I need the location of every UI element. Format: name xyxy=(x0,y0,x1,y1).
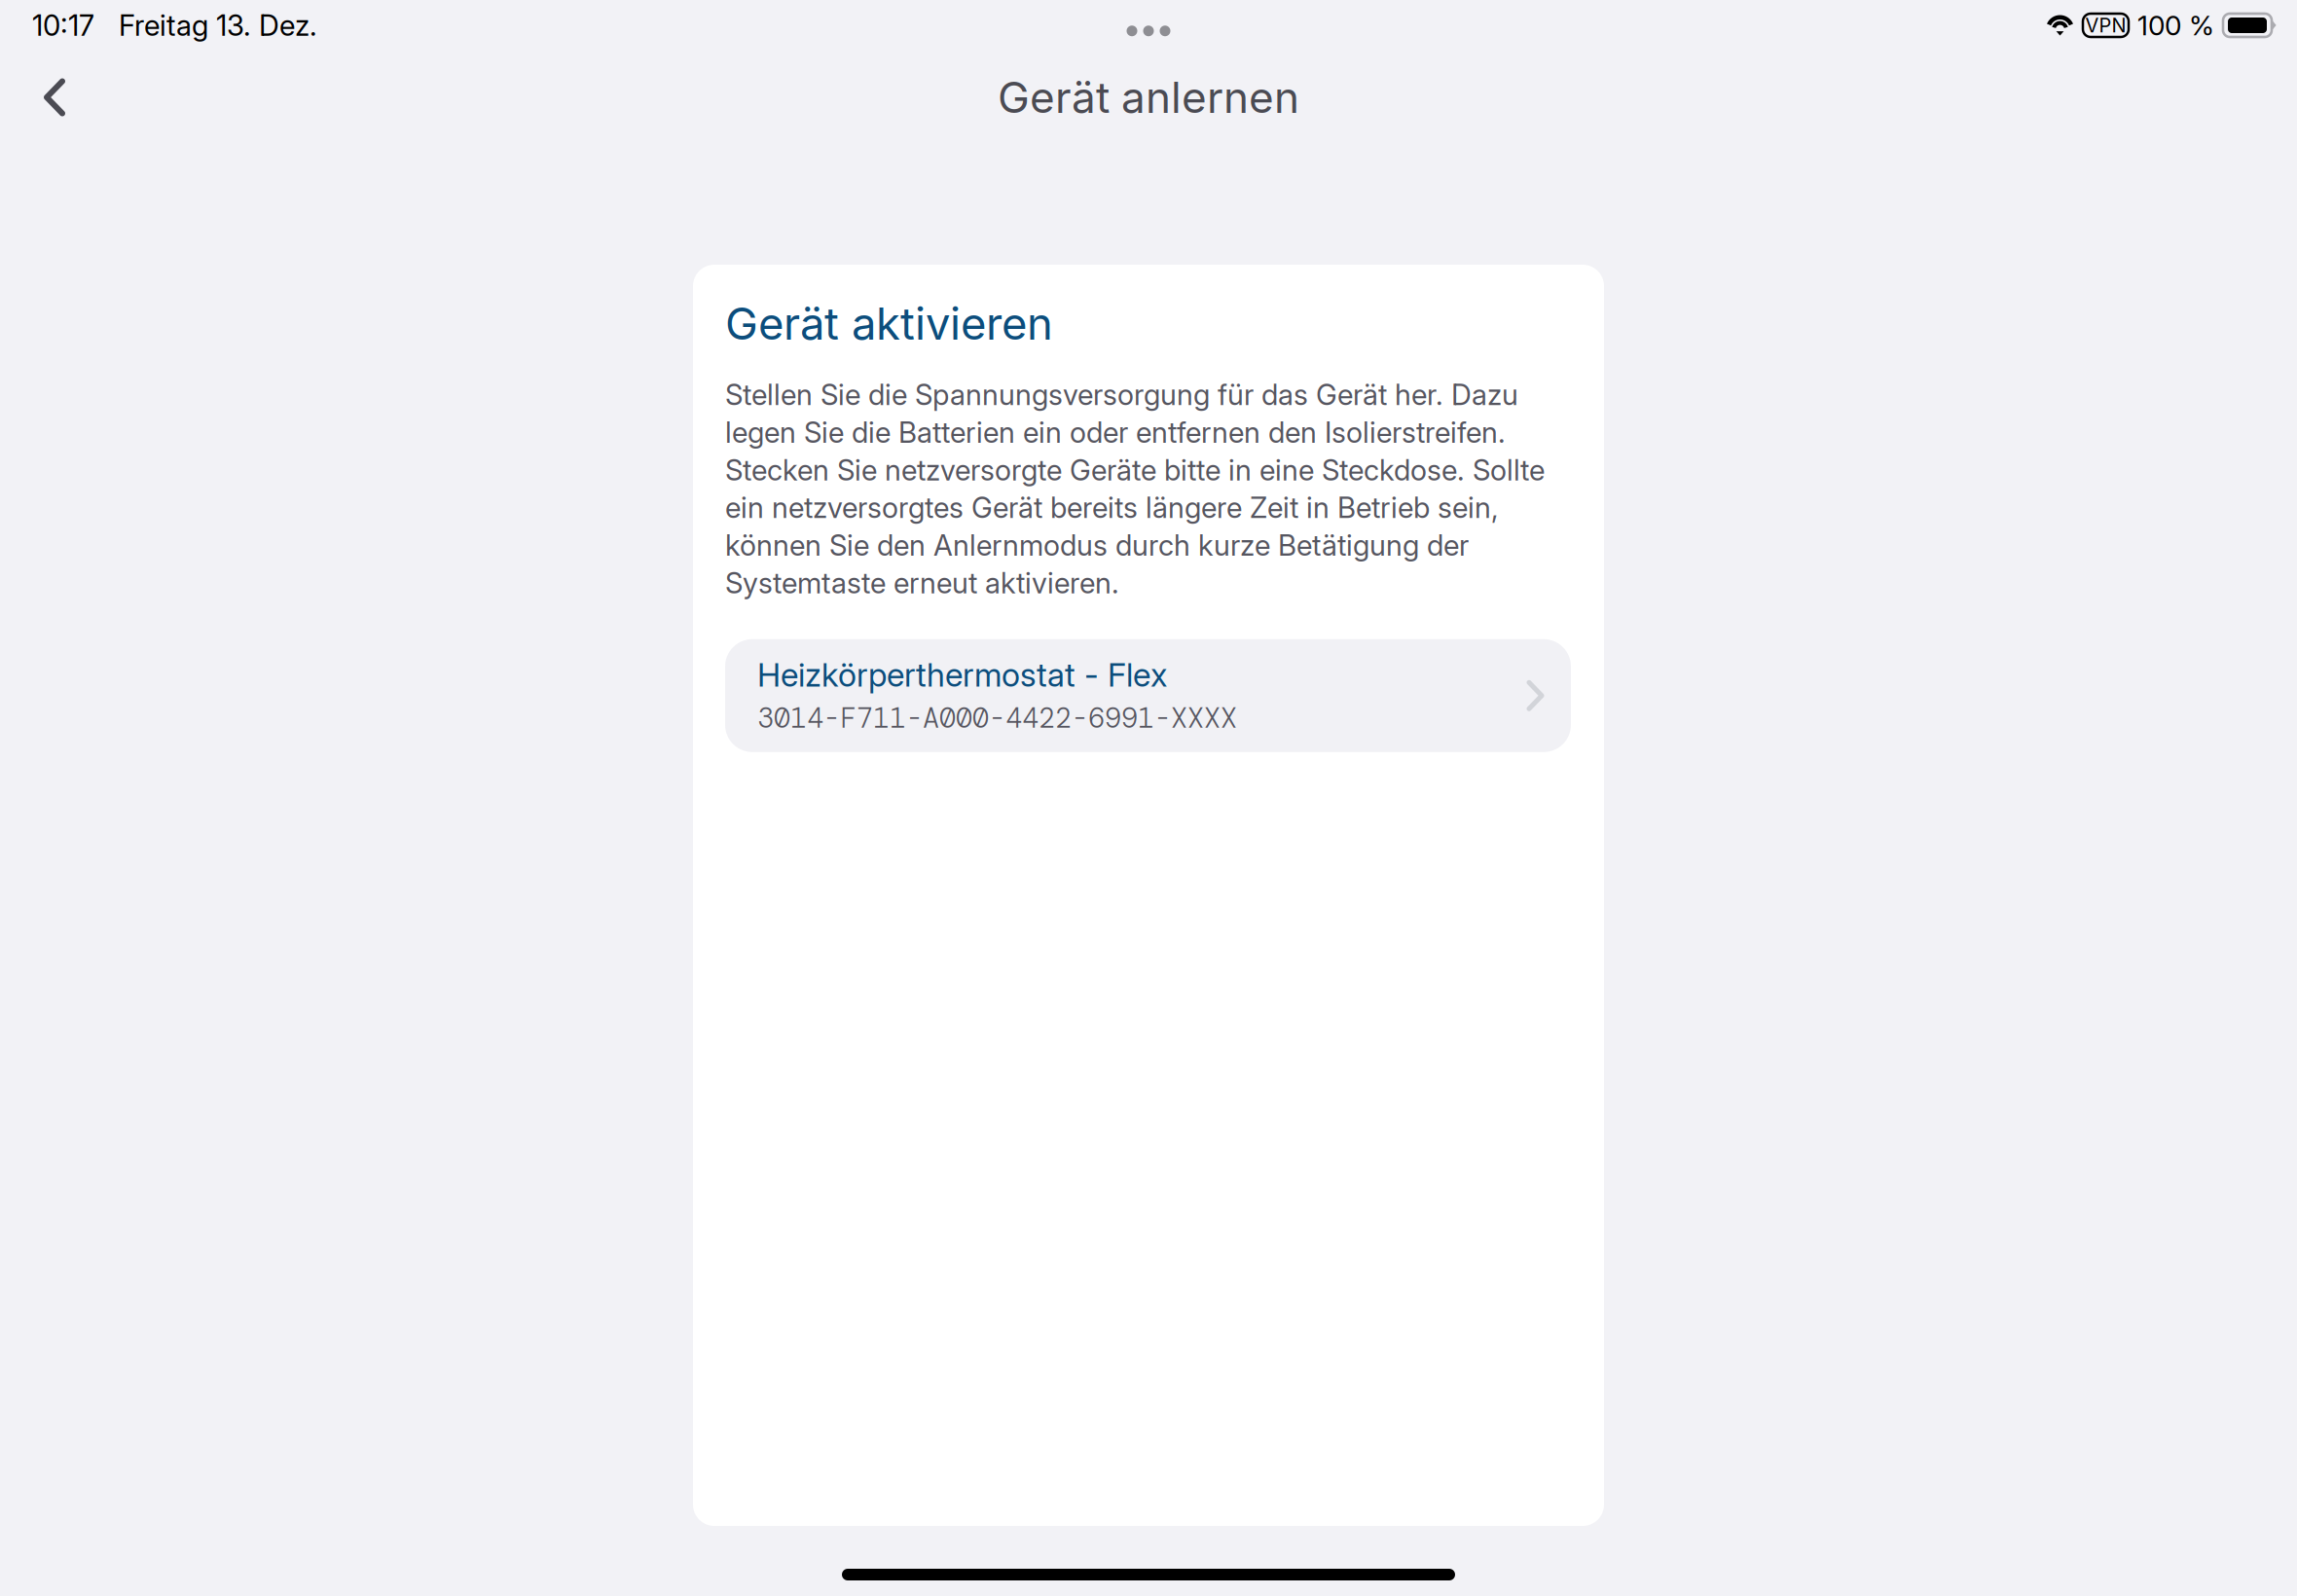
staticText: Heizkörperthermostat - Flex xyxy=(757,655,1167,694)
button[interactable]: Zurück xyxy=(0,51,109,144)
staticText: Gerät aktivieren xyxy=(725,297,1053,350)
staticText: VPN xyxy=(2085,14,2126,37)
staticText: 10:17 xyxy=(32,8,94,43)
staticText: Gerät anlernen xyxy=(998,71,1299,123)
staticText: Stellen Sie die Spannungsversorgung für … xyxy=(725,377,1545,600)
staticText: 100 % xyxy=(2137,9,2214,42)
button[interactable]: Heizkörperthermostat - Flex xyxy=(725,639,1571,752)
staticText: 3014-F711-A000-4422-6991-XXXX xyxy=(757,700,1237,736)
staticText: Freitag 13. Dez. xyxy=(119,8,317,43)
